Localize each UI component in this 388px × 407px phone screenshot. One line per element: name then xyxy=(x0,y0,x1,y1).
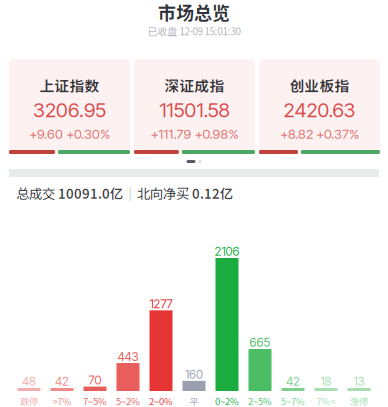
staticText: 市场总览 xyxy=(158,0,230,25)
staticText: 2420.63 xyxy=(283,98,355,122)
staticText: 北向净买 xyxy=(137,183,192,203)
staticText: +0.37% xyxy=(316,126,359,142)
staticText: 平 xyxy=(189,394,198,407)
staticText: 0~2% xyxy=(215,394,239,407)
staticText: 160 xyxy=(185,367,203,382)
staticText: +0.30% xyxy=(66,126,110,142)
staticText: | xyxy=(128,184,131,202)
button[interactable]: 上证指数 xyxy=(9,59,130,154)
staticText: 5~7% xyxy=(281,394,305,407)
staticText: >7% xyxy=(52,394,71,407)
staticText: +0.98% xyxy=(194,126,238,142)
staticText: 48 xyxy=(22,374,36,389)
staticText: 深证成指 xyxy=(164,74,224,96)
staticText: 10091.0亿 xyxy=(58,183,123,203)
staticText: 11501.58 xyxy=(159,98,229,122)
staticText: 7%< xyxy=(316,394,335,407)
staticText: 2~0% xyxy=(149,394,173,407)
button[interactable]: 深证成指 xyxy=(134,59,255,154)
staticText: +8.82 xyxy=(280,126,313,142)
staticText: 总成交 xyxy=(16,183,58,203)
staticText: 2106 xyxy=(214,244,239,259)
staticText: 2~5% xyxy=(248,394,272,407)
staticText: 1277 xyxy=(149,297,172,311)
staticText: 5~2% xyxy=(116,394,140,407)
staticText: 上证指数 xyxy=(39,74,99,96)
staticText: +111.79 xyxy=(150,126,191,142)
staticText: 0.12亿 xyxy=(192,183,233,203)
staticText: 665 xyxy=(249,335,270,350)
button[interactable]: 创业板指 xyxy=(259,59,380,154)
staticText: 18 xyxy=(320,374,331,389)
staticText: 3206.95 xyxy=(33,98,106,122)
staticText: 7~5% xyxy=(83,394,107,407)
staticText: 13 xyxy=(353,374,364,389)
staticText: 42 xyxy=(55,374,69,389)
staticText: 42 xyxy=(286,374,300,389)
staticText: 70 xyxy=(88,373,101,387)
staticText: 涨停 xyxy=(350,394,368,407)
staticText: 已收盘 12-09 15:01:30 xyxy=(147,24,240,38)
staticText: +9.60 xyxy=(29,126,63,142)
staticText: 443 xyxy=(117,349,138,364)
staticText: 跌停 xyxy=(20,394,38,407)
staticText: 创业板指 xyxy=(289,74,349,96)
